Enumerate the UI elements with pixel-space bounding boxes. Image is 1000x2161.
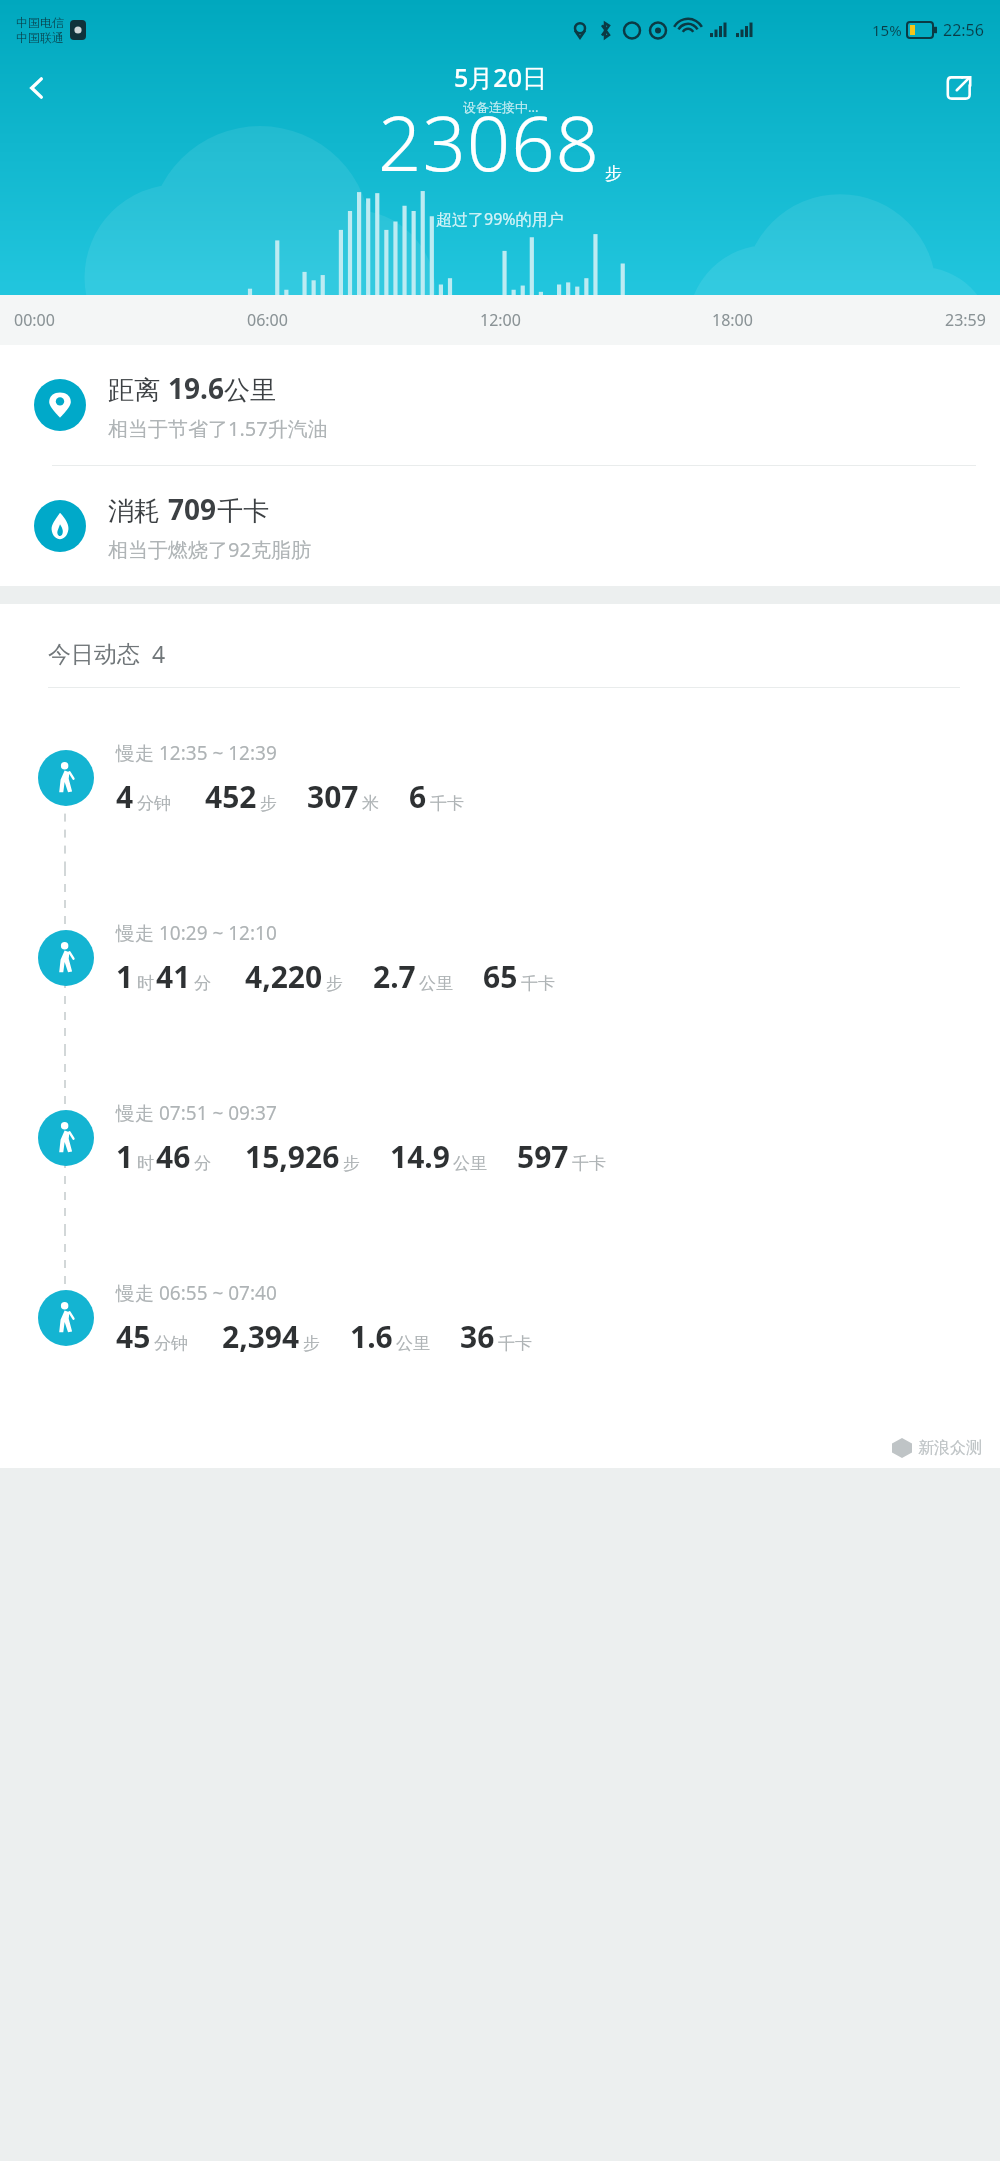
staticText: 6 <box>409 776 427 817</box>
staticText: 65 <box>483 956 518 997</box>
staticText: 597 <box>517 1136 569 1177</box>
staticText: 设备连接中... <box>463 98 539 116</box>
button[interactable]: Back <box>10 61 64 115</box>
staticText: 消耗 <box>108 495 160 528</box>
button[interactable]: 慢走 10:29 ~ 12:10 <box>0 868 1000 1048</box>
staticText: 06:00 <box>247 309 288 331</box>
staticText: 千卡 <box>572 1153 606 1174</box>
staticText: 千卡 <box>430 793 464 814</box>
staticText: 00:00 <box>14 309 55 331</box>
staticText: 452 <box>205 776 257 817</box>
staticText: 4 <box>116 776 134 817</box>
staticText: 19.6 <box>168 369 224 407</box>
staticText: 2.7 <box>373 956 416 997</box>
staticText: 慢走 06:55 ~ 07:40 <box>116 1280 277 1306</box>
staticText: 时 <box>137 973 154 994</box>
staticText: 分钟 <box>137 793 171 814</box>
staticText: 步 <box>260 793 277 814</box>
staticText: 公里 <box>453 1153 487 1174</box>
staticText: 新浪众测 <box>918 1438 982 1458</box>
staticText: 慢走 12:35 ~ 12:39 <box>116 740 277 766</box>
staticText: 慢走 07:51 ~ 09:37 <box>116 1100 277 1126</box>
staticText: 相当于节省了1.57升汽油 <box>108 415 328 442</box>
staticText: 时 <box>137 1153 154 1174</box>
staticText: 41 <box>156 956 191 997</box>
staticText: 23068 <box>378 90 600 194</box>
button[interactable]: 距离 <box>0 345 1000 465</box>
staticText: 慢走 10:29 ~ 12:10 <box>116 920 277 946</box>
button[interactable]: 消耗 <box>0 466 1000 586</box>
staticText: 千卡 <box>521 973 555 994</box>
staticText: 15,926 <box>245 1136 340 1177</box>
staticText: 中国联通 <box>16 30 64 45</box>
staticText: 4,220 <box>245 956 323 997</box>
staticText: 307 <box>307 776 359 817</box>
staticText: 23:59 <box>945 309 986 331</box>
staticText: 公里 <box>396 1333 430 1354</box>
staticText: 22:56 <box>943 19 984 41</box>
staticText: 4 <box>152 638 166 669</box>
staticText: 超过了99%的用户 <box>436 208 564 230</box>
staticText: 分 <box>194 1153 211 1174</box>
staticText: 公里 <box>224 374 276 407</box>
staticText: 1.6 <box>350 1316 393 1357</box>
staticText: 步 <box>326 973 343 994</box>
staticText: 步 <box>605 163 622 184</box>
staticText: 46 <box>156 1136 191 1177</box>
staticText: 14.9 <box>390 1136 450 1177</box>
staticText: 步 <box>343 1153 360 1174</box>
staticText: 千卡 <box>217 495 269 528</box>
staticText: 分 <box>194 973 211 994</box>
staticText: 1 <box>116 956 134 997</box>
staticText: 千卡 <box>498 1333 532 1354</box>
staticText: 相当于燃烧了92克脂肪 <box>108 536 311 563</box>
staticText: 12:00 <box>480 309 521 331</box>
staticText: 15% <box>872 20 902 40</box>
staticText: 步 <box>303 1333 320 1354</box>
staticText: 5月20日 <box>454 60 547 94</box>
staticText: 米 <box>362 793 379 814</box>
button[interactable]: Share <box>932 61 986 115</box>
staticText: 36 <box>460 1316 495 1357</box>
staticText: 45 <box>116 1316 151 1357</box>
button[interactable]: 慢走 06:55 ~ 07:40 <box>0 1228 1000 1408</box>
button[interactable]: 慢走 12:35 ~ 12:39 <box>0 688 1000 868</box>
staticText: 公里 <box>419 973 453 994</box>
staticText: 分钟 <box>154 1333 188 1354</box>
staticText: 709 <box>168 490 217 528</box>
staticText: 中国电信 <box>16 15 64 30</box>
staticText: 2,394 <box>222 1316 300 1357</box>
button[interactable]: 慢走 07:51 ~ 09:37 <box>0 1048 1000 1228</box>
staticText: 1 <box>116 1136 134 1177</box>
staticText: 距离 <box>108 374 160 407</box>
staticText: 今日动态 <box>48 640 140 669</box>
staticText: 18:00 <box>712 309 753 331</box>
